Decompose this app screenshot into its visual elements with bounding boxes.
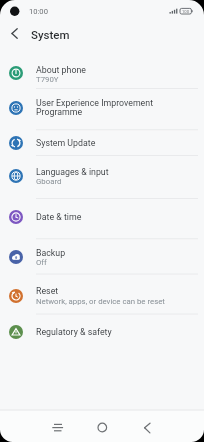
staticText: Languages & input xyxy=(36,167,109,177)
staticText: T790Y xyxy=(36,75,59,84)
button[interactable] xyxy=(91,416,114,439)
button[interactable] xyxy=(135,416,158,439)
staticText: Off xyxy=(36,258,47,267)
button[interactable]: Backup xyxy=(0,239,204,274)
button[interactable] xyxy=(46,416,69,439)
staticText: Gboard xyxy=(36,177,62,186)
button[interactable]: Languages & input xyxy=(0,156,204,199)
staticText: 10:00 xyxy=(29,7,48,16)
button[interactable]: Reset xyxy=(0,274,204,314)
button[interactable] xyxy=(6,25,24,43)
staticText: About phone xyxy=(36,65,86,75)
staticText: Regulatory & safety xyxy=(36,327,112,337)
staticText: Backup xyxy=(36,248,66,258)
button[interactable]: User Experience Improvement xyxy=(0,89,204,130)
button[interactable]: About phone xyxy=(0,50,204,89)
staticText: System Update xyxy=(36,138,96,148)
staticText: Reset xyxy=(36,286,59,296)
staticText: Network, apps, or device can be reset xyxy=(36,297,165,306)
staticText: 100 xyxy=(182,9,190,14)
staticText: System xyxy=(31,28,70,41)
button[interactable]: Date & time xyxy=(0,199,204,239)
staticText: Date & time xyxy=(36,212,82,222)
staticText: User Experience Improvement xyxy=(36,98,154,108)
staticText: Programme xyxy=(36,107,83,117)
button[interactable]: System Update xyxy=(0,130,204,156)
button[interactable]: Regulatory & safety xyxy=(0,314,204,350)
